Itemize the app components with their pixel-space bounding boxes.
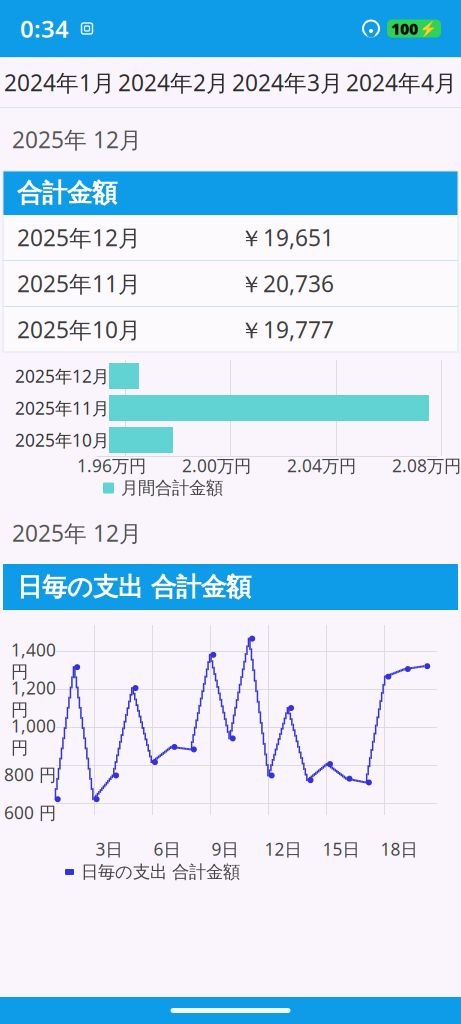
staticText: 月間合計金額 bbox=[121, 477, 223, 499]
staticText: 1.96万円 bbox=[77, 454, 146, 477]
button[interactable]: 2024年4月 bbox=[344, 57, 458, 108]
staticText: 18日 bbox=[380, 837, 417, 860]
staticText: 600 円 bbox=[4, 801, 56, 824]
button[interactable]: 2024年3月 bbox=[230, 57, 344, 108]
staticText: 3日 bbox=[95, 837, 122, 860]
staticText: ￥20,736 bbox=[240, 268, 334, 299]
staticText: 800 円 bbox=[4, 763, 56, 786]
staticText: 2.04万円 bbox=[287, 454, 356, 477]
staticText: 6日 bbox=[153, 837, 180, 860]
staticText: 合計金額 bbox=[17, 177, 117, 208]
staticText: 2025年 12月 bbox=[12, 518, 142, 548]
staticText: 1,200 円 bbox=[11, 676, 56, 721]
staticText: 2025年11月 bbox=[17, 268, 141, 298]
staticText: 2025年 12月 bbox=[12, 124, 142, 154]
button[interactable]: 2024年1月 bbox=[2, 57, 116, 108]
staticText: 2.00万円 bbox=[182, 454, 251, 477]
staticText: 15日 bbox=[322, 837, 359, 860]
staticText: 2025年10月 bbox=[15, 428, 109, 451]
staticText: 2024年2月 bbox=[118, 67, 229, 97]
staticText: 2024年3月 bbox=[232, 67, 343, 97]
staticText: 2.08万円 bbox=[392, 454, 461, 477]
staticText: 0:34 bbox=[20, 13, 69, 44]
staticText: 1,000 円 bbox=[11, 714, 56, 759]
staticText: 9日 bbox=[211, 837, 238, 860]
staticText: ⚡ bbox=[419, 20, 437, 37]
staticText: 12日 bbox=[264, 837, 301, 860]
staticText: 2025年12月 bbox=[15, 364, 109, 387]
staticText: 2025年10月 bbox=[17, 314, 141, 344]
staticText: 日毎の支出 合計金額 bbox=[17, 571, 251, 602]
staticText: ￥19,777 bbox=[240, 314, 334, 345]
staticText: 2024年1月 bbox=[4, 67, 115, 97]
staticText: 100 bbox=[391, 18, 418, 39]
staticText: ￥19,651 bbox=[240, 222, 334, 253]
button[interactable]: 2024年2月 bbox=[116, 57, 230, 108]
staticText: 2024年4月 bbox=[346, 67, 457, 97]
staticText: 2025年12月 bbox=[17, 222, 141, 252]
staticText: 1,400 円 bbox=[11, 638, 56, 683]
staticText: 日毎の支出 合計金額 bbox=[81, 861, 240, 883]
staticText: 2025年11月 bbox=[15, 396, 109, 419]
